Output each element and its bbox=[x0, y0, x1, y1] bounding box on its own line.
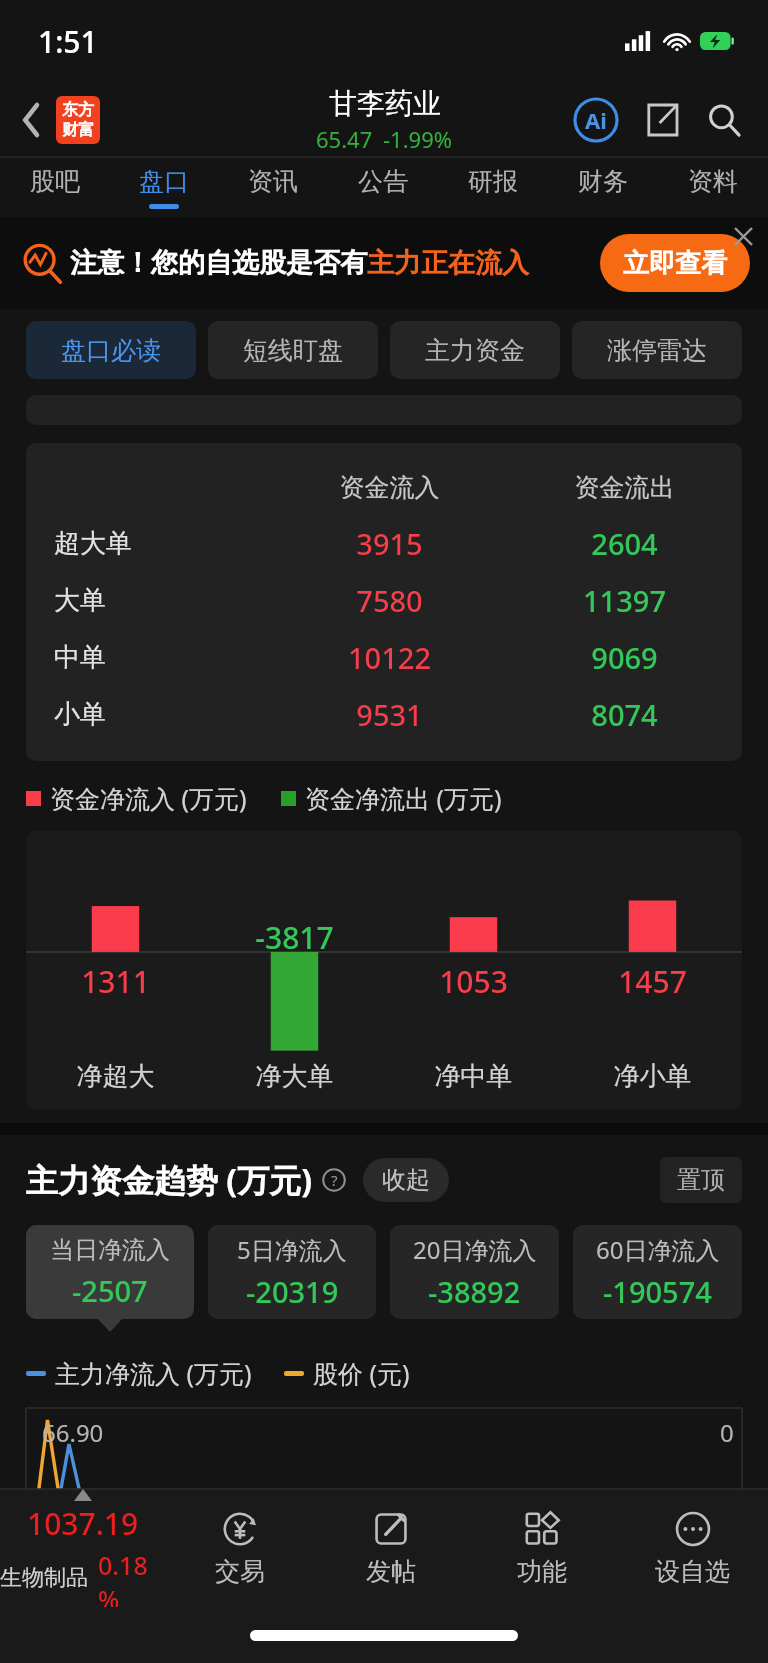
button[interactable]: 当日净流入 bbox=[26, 1225, 194, 1319]
staticText: 短线盯盘 bbox=[243, 335, 343, 366]
button[interactable]: 20日净流入 bbox=[390, 1225, 559, 1319]
staticText: 资金流出 bbox=[507, 472, 742, 503]
staticText: 设自选 bbox=[655, 1556, 730, 1587]
button[interactable]: Share bbox=[636, 94, 688, 146]
staticText: 东方 bbox=[62, 100, 94, 120]
staticText: 资金净流出 (万元) bbox=[305, 781, 502, 815]
button[interactable]: 5日净流入 bbox=[208, 1225, 376, 1319]
staticText: 11397 bbox=[507, 581, 742, 620]
staticText: 7580 bbox=[272, 581, 507, 620]
button[interactable]: 资讯 bbox=[218, 157, 328, 217]
staticText: 10122 bbox=[272, 638, 507, 677]
staticText: 9069 bbox=[507, 638, 742, 677]
button[interactable]: 盘口必读 bbox=[26, 321, 196, 379]
staticText: 交易 bbox=[215, 1556, 265, 1587]
button[interactable]: 立即查看 bbox=[600, 234, 750, 292]
button[interactable]: 财务 bbox=[548, 157, 658, 217]
staticText: 公告 bbox=[358, 166, 408, 197]
staticText: 净小单 bbox=[563, 1060, 742, 1093]
button[interactable]: 功能 bbox=[466, 1489, 617, 1607]
button[interactable]: 大单 bbox=[26, 572, 742, 629]
staticText: 20日净流入 bbox=[413, 1233, 537, 1266]
button[interactable]: Help bbox=[319, 1165, 349, 1195]
button[interactable]: 主力资金 bbox=[390, 321, 560, 379]
button[interactable]: 超大单 bbox=[26, 515, 742, 572]
staticText: 生物制品 bbox=[0, 1564, 88, 1592]
staticText: 主力正在流入 bbox=[367, 246, 529, 280]
staticText: 资金净流入 (万元) bbox=[50, 781, 247, 815]
button[interactable]: 研报 bbox=[438, 157, 548, 217]
staticText: -38892 bbox=[428, 1272, 521, 1311]
button[interactable]: 交易 bbox=[165, 1489, 315, 1607]
button[interactable]: 短线盯盘 bbox=[208, 321, 378, 379]
staticText: 0.18% bbox=[98, 1548, 165, 1607]
button[interactable]: 盘口 bbox=[109, 157, 218, 217]
button[interactable]: 设自选 bbox=[617, 1489, 768, 1607]
staticText: 净中单 bbox=[384, 1060, 563, 1093]
staticText: 60日净流入 bbox=[596, 1233, 720, 1266]
staticText: 5日净流入 bbox=[237, 1233, 347, 1266]
staticText: 1053 bbox=[384, 961, 563, 1002]
staticText: Ai bbox=[585, 105, 607, 135]
button[interactable]: 60日净流入 bbox=[573, 1225, 742, 1319]
button[interactable]: Close bbox=[726, 219, 760, 253]
button[interactable]: 发帖 bbox=[315, 1489, 466, 1607]
staticText: 财富 bbox=[62, 120, 94, 140]
staticText: 2604 bbox=[507, 524, 742, 563]
button[interactable]: 公告 bbox=[328, 157, 438, 217]
staticText: 股吧 bbox=[30, 166, 80, 197]
button[interactable]: AI assistant bbox=[570, 94, 622, 146]
staticText: 0 bbox=[720, 1416, 734, 1449]
staticText: 置顶 bbox=[677, 1165, 725, 1195]
staticText: ? bbox=[331, 1170, 338, 1190]
staticText: 股价 (元) bbox=[313, 1356, 410, 1390]
staticText: 资料 bbox=[688, 166, 738, 197]
staticText: 甘李药业 bbox=[329, 86, 441, 121]
staticText: 财务 bbox=[578, 166, 628, 197]
staticText: 主力资金趋势 (万元) bbox=[26, 1158, 313, 1202]
staticText: -190574 bbox=[603, 1272, 712, 1311]
button[interactable]: Search bbox=[698, 94, 750, 146]
button[interactable]: 1037.19 bbox=[0, 1489, 165, 1607]
staticText: 涨停雷达 bbox=[607, 335, 707, 366]
staticText: 1311 bbox=[26, 961, 205, 1002]
button[interactable]: 股吧 bbox=[0, 157, 109, 217]
staticText: 主力资金 bbox=[425, 335, 525, 366]
button[interactable]: 收起 bbox=[363, 1158, 449, 1202]
staticText: 1037.19 bbox=[27, 1503, 139, 1544]
staticText: 立即查看 bbox=[623, 247, 727, 280]
staticText: 大单 bbox=[54, 584, 272, 617]
staticText: 3915 bbox=[272, 524, 507, 563]
button[interactable]: 置顶 bbox=[660, 1157, 742, 1203]
staticText: 资讯 bbox=[248, 166, 298, 197]
staticText: 65.47 bbox=[316, 124, 373, 154]
staticText: 当日净流入 bbox=[50, 1235, 170, 1265]
staticText: -1.99% bbox=[383, 124, 453, 154]
button[interactable]: 注意！您的自选股是否有 bbox=[0, 217, 768, 309]
staticText: -3817 bbox=[205, 917, 384, 958]
staticText: 9531 bbox=[272, 695, 507, 734]
button[interactable]: Back bbox=[10, 98, 54, 142]
button[interactable]: 小单 bbox=[26, 686, 742, 743]
button[interactable]: 资料 bbox=[658, 157, 768, 217]
staticText: 1:51 bbox=[38, 21, 98, 62]
staticText: 功能 bbox=[517, 1556, 567, 1587]
button[interactable]: 涨停雷达 bbox=[572, 321, 742, 379]
staticText: 小单 bbox=[54, 698, 272, 731]
staticText: 主力净流入 (万元) bbox=[55, 1356, 252, 1390]
staticText: -20319 bbox=[246, 1272, 339, 1311]
staticText: -2507 bbox=[72, 1271, 148, 1310]
staticText: 净大单 bbox=[205, 1060, 384, 1093]
staticText: 8074 bbox=[507, 695, 742, 734]
staticText: 资金流入 bbox=[272, 472, 507, 503]
staticText: 净超大 bbox=[26, 1060, 205, 1093]
staticText: 收起 bbox=[382, 1165, 430, 1195]
staticText: 发帖 bbox=[366, 1556, 416, 1587]
staticText: 研报 bbox=[468, 166, 518, 197]
staticText: 中单 bbox=[54, 641, 272, 674]
button[interactable]: 中单 bbox=[26, 629, 742, 686]
button[interactable]: East Money bbox=[56, 96, 100, 144]
staticText: 盘口必读 bbox=[61, 335, 161, 366]
staticText: 盘口 bbox=[139, 166, 189, 197]
staticText: 超大单 bbox=[54, 527, 272, 560]
